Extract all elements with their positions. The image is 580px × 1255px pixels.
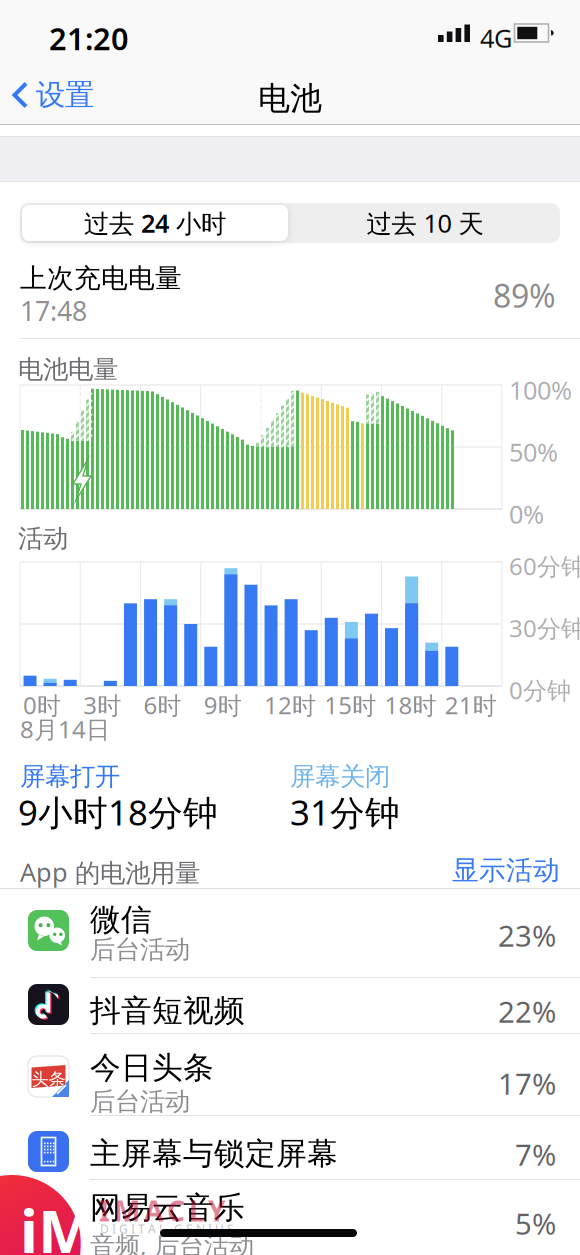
staticText: 微信 [90,901,152,939]
staticText: 屏幕打开 [20,761,120,792]
staticText: 18时 [384,689,436,721]
staticText: 过去 10 天 [366,206,483,240]
staticText: 15时 [324,689,376,721]
staticText: 后台活动 [90,934,190,965]
staticText: 抖音短视频 [90,992,245,1030]
staticText: 9小时18分钟 [18,789,218,835]
staticText: 21:20 [49,18,129,59]
staticText: 今日头条 [90,1049,214,1087]
staticText: 17% [498,1064,556,1103]
button[interactable]: 主屏幕与锁定屏幕 [0,1131,580,1191]
staticText: 电池电量 [18,354,118,385]
staticText: 8月14日 [20,713,110,745]
staticText: 0分钟 [509,674,571,706]
staticText: App 的电池用量 [20,855,200,889]
staticText: 50% [509,435,558,469]
staticText: 100% [509,373,572,407]
staticText: 过去 24 小时 [84,206,226,240]
staticText: 音频, 后台活动 [90,1228,254,1255]
staticText: 屏幕关闭 [290,761,390,792]
staticText: 主屏幕与锁定屏幕 [90,1135,338,1173]
staticText: 头条 [31,1068,65,1090]
staticText: 31分钟 [290,789,400,835]
staticText: iM [20,1190,95,1255]
staticText: 4G [480,21,512,55]
staticText: 6时 [143,689,181,721]
button[interactable]: 网易云音乐 [0,1200,580,1255]
staticText: 后台活动 [90,1086,190,1117]
staticText: 网易云音乐 [90,1189,245,1227]
button[interactable]: 微信 [0,910,580,970]
staticText: 电池 [258,79,322,118]
staticText: 0时 [23,689,61,721]
staticText: 上次充电电量 [20,262,182,295]
button[interactable]: 抖音短视频 [0,984,580,1044]
staticText: 9时 [204,689,242,721]
staticText: 3时 [83,689,121,721]
button[interactable]: 显示活动 [380,854,560,887]
staticText: 7% [515,1135,556,1174]
staticText: 0% [509,497,544,531]
staticText: 23% [498,916,556,955]
staticText: 5% [515,1204,556,1243]
staticText: 21时 [445,689,497,721]
staticText: 显示活动 [452,854,560,887]
staticText: 30分钟 [509,612,580,644]
button[interactable]: 返回设置 [12,77,94,113]
staticText: 17:48 [20,293,87,328]
staticText: 89% [493,274,556,316]
staticText: 活动 [18,523,68,554]
staticText: 22% [498,992,556,1031]
button[interactable]: 过去 10 天 [290,203,560,243]
button[interactable]: 过去 24 小时 [22,205,288,241]
staticText: 12时 [264,689,316,721]
staticText: 设置 [36,77,94,113]
staticText: IMACLY [99,1192,226,1229]
staticText: D I G I T A L G E N I U S [100,1221,234,1237]
staticText: 60分钟 [509,550,580,582]
button[interactable]: 头条 [0,1056,580,1116]
